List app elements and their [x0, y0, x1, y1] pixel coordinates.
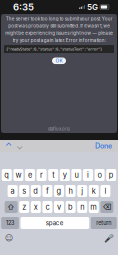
staticText: q [4, 170, 9, 179]
button[interactable]: Emoji [3, 233, 15, 243]
staticText: The server took too long to submit your … [5, 16, 113, 43]
staticText: y [63, 170, 67, 179]
button[interactable]: x [31, 201, 41, 213]
staticText: staflux.org [48, 126, 70, 131]
staticText: d [33, 186, 38, 195]
button[interactable]: p [106, 169, 116, 181]
button[interactable]: space [20, 217, 89, 229]
button[interactable]: m [89, 201, 99, 213]
button[interactable]: s [19, 185, 29, 197]
staticText: c [45, 202, 49, 211]
button[interactable]: k [89, 185, 99, 197]
staticText: m [90, 202, 97, 211]
button[interactable]: 123 [1, 217, 19, 229]
button[interactable]: b [66, 201, 76, 213]
button[interactable]: f [42, 185, 52, 197]
staticText: j [81, 186, 83, 195]
staticText: v [57, 202, 61, 211]
staticText: Done [95, 142, 112, 150]
button[interactable]: a [8, 185, 18, 197]
button[interactable]: d [31, 185, 41, 197]
staticText: 5G [87, 2, 98, 12]
staticText: w [15, 170, 21, 179]
staticText: z [22, 202, 26, 211]
staticText: ⌄ [16, 140, 23, 152]
button[interactable]: c [42, 201, 52, 213]
staticText: i [87, 170, 89, 179]
staticText: u [74, 170, 78, 179]
staticText: space [46, 219, 64, 227]
staticText: r [40, 170, 43, 179]
button[interactable]: y [60, 169, 70, 181]
staticText: OK [55, 58, 62, 64]
staticText: ⌃ [5, 140, 12, 152]
staticText: o [98, 170, 102, 179]
staticText: a [11, 186, 15, 195]
button[interactable]: q [2, 169, 12, 181]
button[interactable]: e [25, 169, 35, 181]
button[interactable]: z [19, 201, 29, 213]
button[interactable]: l [100, 185, 110, 197]
button[interactable]: Previous field [3, 140, 14, 152]
button[interactable]: Done [92, 140, 115, 152]
button[interactable]: Next field [14, 140, 25, 152]
button[interactable]: Dictation [103, 233, 115, 243]
staticText: x [34, 202, 38, 211]
button[interactable]: OK [52, 57, 66, 64]
button[interactable]: o [95, 169, 105, 181]
staticText: {"readyState":0,"status":0,"statusText":… [6, 47, 102, 51]
staticText: n [80, 202, 84, 211]
button[interactable]: t [48, 169, 58, 181]
button[interactable]: n [77, 201, 87, 213]
staticText: ⌫ [102, 202, 111, 211]
staticText: p [109, 170, 114, 179]
staticText: return [96, 220, 111, 226]
staticText: 123 [6, 220, 14, 226]
staticText: ⇧ [7, 202, 15, 211]
staticText: g [56, 186, 61, 195]
button[interactable]: g [54, 185, 64, 197]
button[interactable]: ⌫ [100, 201, 113, 213]
staticText: ☺ [5, 233, 13, 243]
button[interactable]: i [83, 169, 93, 181]
staticText: l [104, 186, 106, 195]
staticText: f [46, 186, 49, 195]
button[interactable]: j [77, 185, 87, 197]
button[interactable]: return [91, 217, 117, 229]
staticText: b [68, 202, 73, 211]
button[interactable]: v [54, 201, 64, 213]
staticText: 6:35 [13, 1, 34, 13]
button[interactable]: u [71, 169, 81, 181]
button[interactable]: ⇧ [5, 201, 18, 213]
staticText: e [28, 170, 32, 179]
staticText: h [69, 186, 73, 195]
staticText: t [52, 170, 54, 179]
staticText: s [22, 186, 26, 195]
staticText: 🎤 [104, 233, 114, 243]
button[interactable]: r [37, 169, 47, 181]
button[interactable]: h [66, 185, 76, 197]
staticText: k [92, 186, 96, 195]
button[interactable]: w [13, 169, 23, 181]
